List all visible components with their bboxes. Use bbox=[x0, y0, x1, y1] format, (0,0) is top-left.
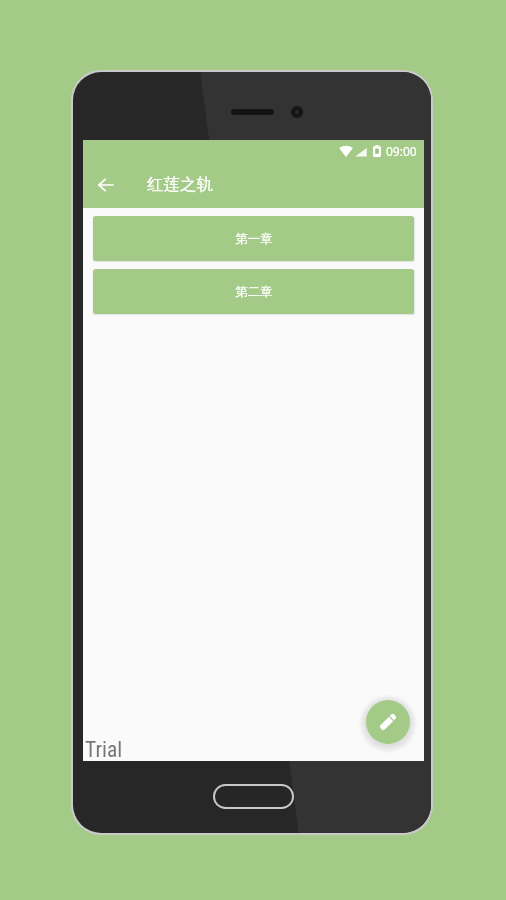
staticText: 09:00 bbox=[386, 143, 417, 159]
staticText: 第一章 bbox=[235, 231, 273, 247]
staticText: 第二章 bbox=[235, 284, 273, 300]
staticText: Trial bbox=[85, 737, 123, 762]
button[interactable]: 第一章 bbox=[93, 216, 414, 261]
staticText: 红莲之轨 bbox=[147, 174, 213, 195]
button[interactable]: Compose bbox=[366, 700, 410, 744]
button[interactable]: Back bbox=[89, 169, 121, 201]
button[interactable]: 第二章 bbox=[93, 269, 414, 314]
